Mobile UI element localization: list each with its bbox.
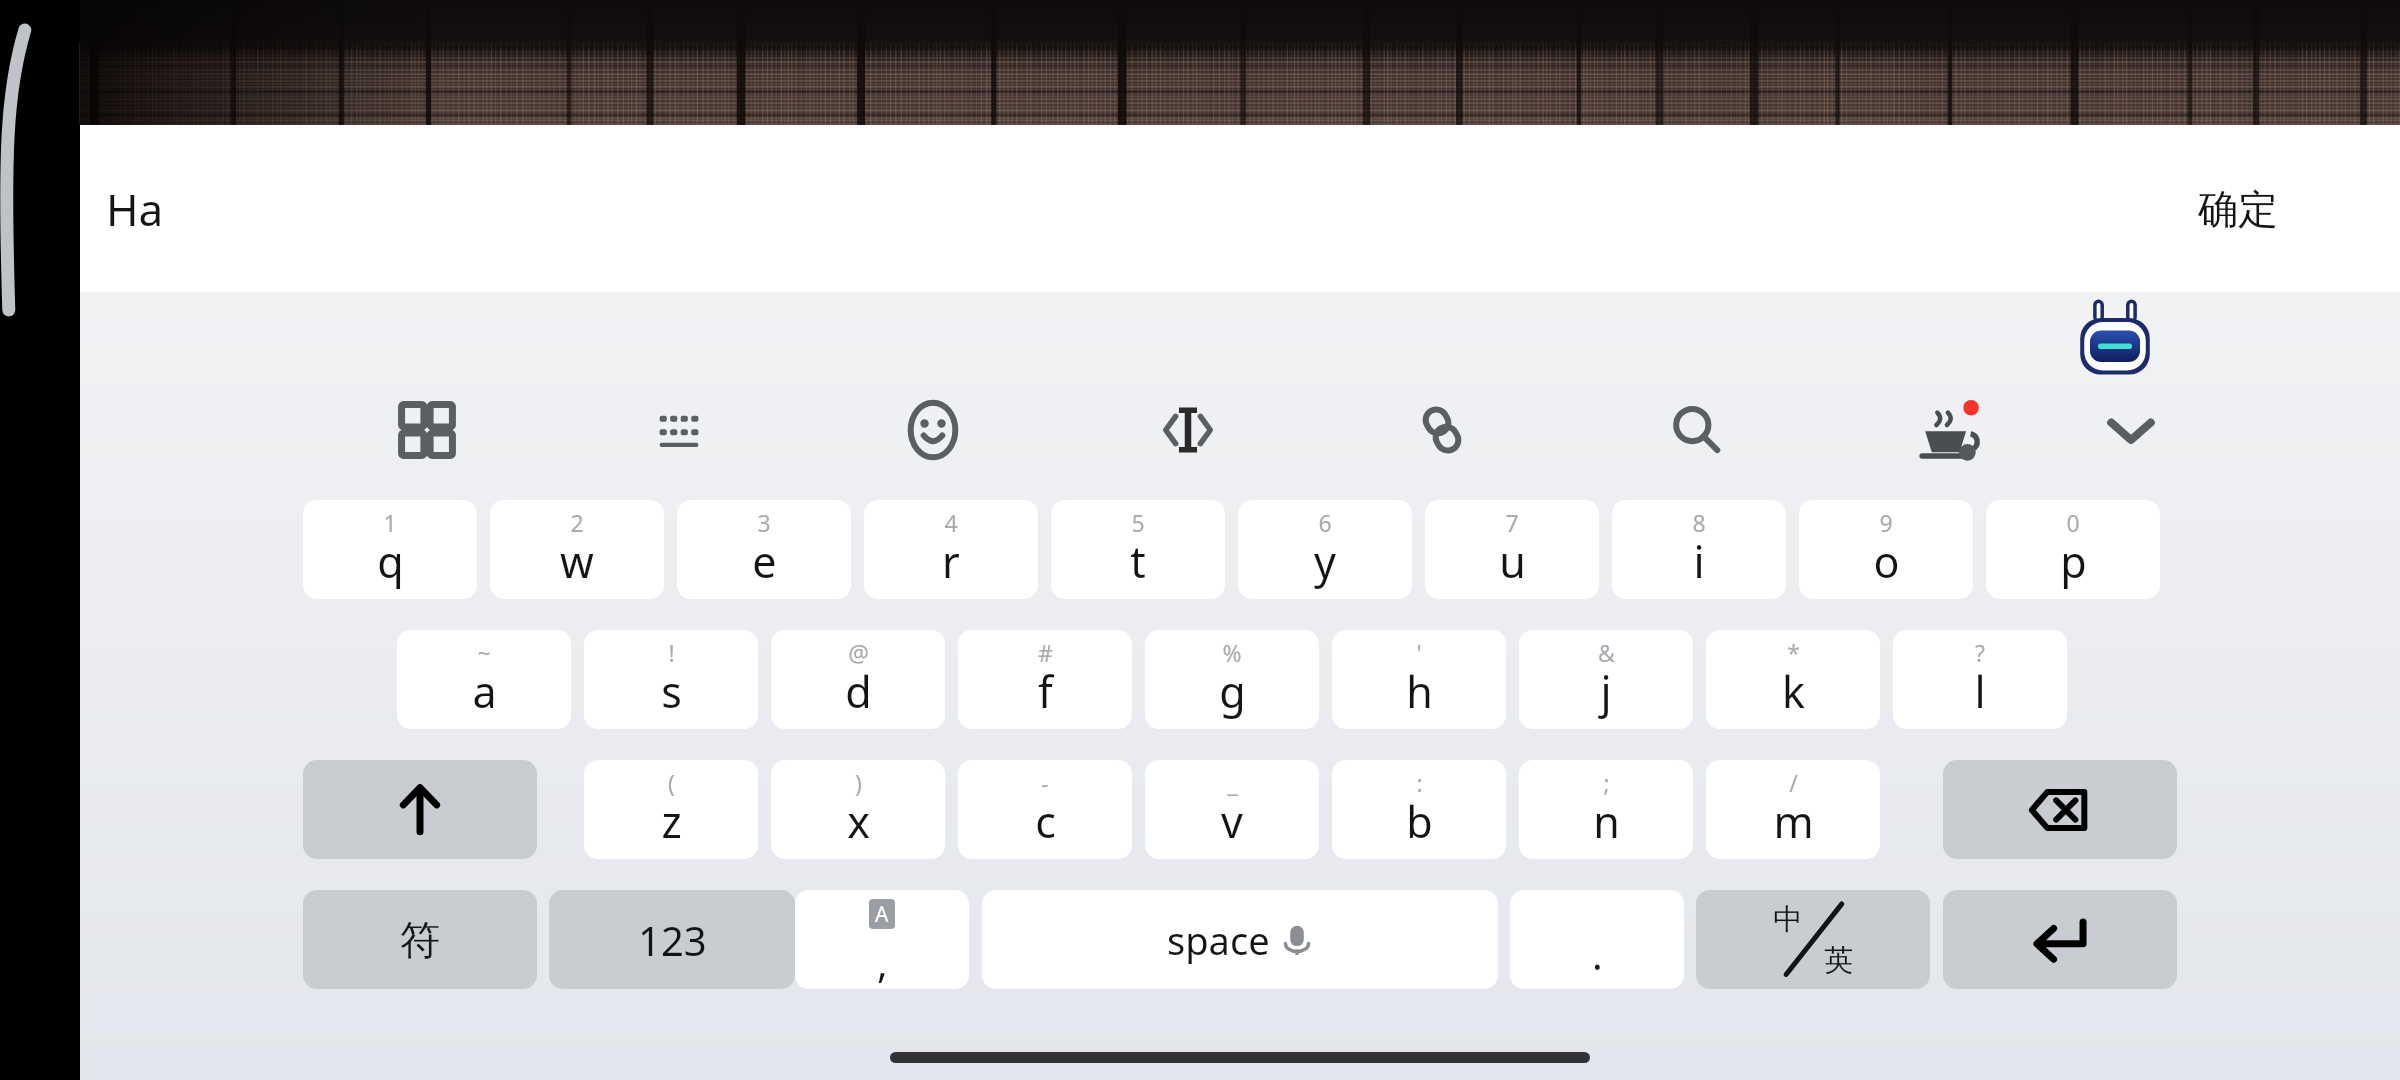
staticText: 确定	[2198, 184, 2278, 234]
button[interactable]: Emoji	[885, 382, 981, 478]
staticText: y	[1314, 532, 1336, 591]
staticText: 6	[1318, 507, 1332, 538]
staticText: p	[2060, 532, 2087, 591]
staticText: 1	[383, 507, 397, 538]
staticText: (	[668, 767, 675, 798]
staticText: j	[1600, 662, 1612, 721]
button[interactable]: Backspace	[1943, 760, 2177, 859]
button[interactable]: Hide keyboard	[2083, 382, 2179, 478]
button[interactable]: :	[1332, 760, 1506, 859]
staticText: d	[845, 662, 872, 721]
button[interactable]: 1	[303, 500, 477, 599]
staticText: a	[472, 662, 497, 721]
button[interactable]: _	[1145, 760, 1319, 859]
button[interactable]: Shift	[303, 760, 537, 859]
button[interactable]: Chinese English toggle	[1696, 890, 1930, 989]
button[interactable]: 4	[864, 500, 1038, 599]
staticText: :	[1416, 767, 1423, 798]
staticText: space	[1167, 914, 1270, 966]
staticText: A	[875, 900, 889, 929]
staticText: !	[668, 637, 675, 668]
staticText: u	[1499, 532, 1526, 591]
staticText: Ha	[106, 179, 164, 239]
staticText: -	[1041, 767, 1049, 798]
staticText: g	[1219, 662, 1246, 721]
button[interactable]: ~	[397, 630, 571, 729]
button[interactable]: 符	[303, 890, 537, 989]
button[interactable]: 8	[1612, 500, 1786, 599]
button[interactable]: 3	[677, 500, 851, 599]
staticText: 5	[1131, 507, 1145, 538]
staticText: t	[1130, 532, 1146, 591]
button[interactable]: 6	[1238, 500, 1412, 599]
button[interactable]: #	[958, 630, 1132, 729]
button[interactable]: Clipboard	[1394, 382, 1490, 478]
staticText: w	[560, 532, 594, 591]
button[interactable]: Panels	[379, 382, 475, 478]
staticText: n	[1593, 792, 1620, 851]
button[interactable]: @	[771, 630, 945, 729]
button[interactable]: Search	[1648, 382, 1744, 478]
staticText: 英	[1824, 942, 1853, 979]
staticText: ?	[1975, 637, 1985, 668]
staticText: r	[942, 532, 960, 591]
staticText: 3	[757, 507, 771, 538]
button[interactable]: Assistant	[2068, 288, 2162, 382]
staticText: 8	[1692, 507, 1706, 538]
button[interactable]: Keyboard layout	[631, 382, 727, 478]
button[interactable]: Move cursor	[1140, 382, 1236, 478]
staticText: 2	[570, 507, 584, 538]
button[interactable]: *	[1706, 630, 1880, 729]
staticText: o	[1873, 532, 1900, 591]
staticText: /	[1789, 767, 1798, 798]
staticText: k	[1782, 662, 1805, 721]
button[interactable]: -	[958, 760, 1132, 859]
button[interactable]: 123	[549, 890, 795, 989]
staticText: 123	[638, 913, 707, 967]
button[interactable]: &	[1519, 630, 1693, 729]
staticText: )	[855, 767, 862, 798]
button[interactable]: )	[771, 760, 945, 859]
button[interactable]: 9	[1799, 500, 1973, 599]
button[interactable]: ?	[1893, 630, 2067, 729]
button[interactable]: '	[1332, 630, 1506, 729]
staticText: .	[1592, 927, 1603, 981]
staticText: @	[848, 637, 869, 668]
staticText: 7	[1505, 507, 1519, 538]
button[interactable]: %	[1145, 630, 1319, 729]
staticText: h	[1406, 662, 1433, 721]
staticText: e	[752, 532, 777, 591]
staticText: 中	[1773, 901, 1802, 938]
button[interactable]: A	[795, 890, 969, 989]
staticText: f	[1038, 662, 1053, 721]
button[interactable]: (	[584, 760, 758, 859]
staticText: &	[1598, 637, 1615, 668]
staticText: '	[1416, 637, 1422, 668]
staticText: _	[1227, 767, 1238, 798]
staticText: z	[661, 792, 682, 851]
button[interactable]: /	[1706, 760, 1880, 859]
staticText: 9	[1879, 507, 1893, 538]
staticText: m	[1773, 792, 1814, 851]
staticText: l	[1974, 662, 1986, 721]
button[interactable]: Enter	[1943, 890, 2177, 989]
button[interactable]: .	[1510, 890, 1684, 989]
button[interactable]: 5	[1051, 500, 1225, 599]
staticText: s	[661, 662, 682, 721]
button[interactable]: 7	[1425, 500, 1599, 599]
button[interactable]: space	[982, 890, 1498, 989]
button[interactable]: 确定	[2186, 176, 2290, 242]
button[interactable]: !	[584, 630, 758, 729]
staticText: 4	[944, 507, 958, 538]
button[interactable]: ;	[1519, 760, 1693, 859]
staticText: #	[1038, 637, 1053, 668]
button[interactable]: 0	[1986, 500, 2160, 599]
staticText: i	[1693, 532, 1705, 591]
button[interactable]: Recommendations	[1902, 382, 1998, 478]
staticText: *	[1787, 637, 1800, 668]
staticText: ,	[877, 935, 888, 989]
staticText: b	[1406, 792, 1433, 851]
button[interactable]: 2	[490, 500, 664, 599]
staticText: ~	[477, 637, 491, 668]
staticText: v	[1221, 792, 1243, 851]
